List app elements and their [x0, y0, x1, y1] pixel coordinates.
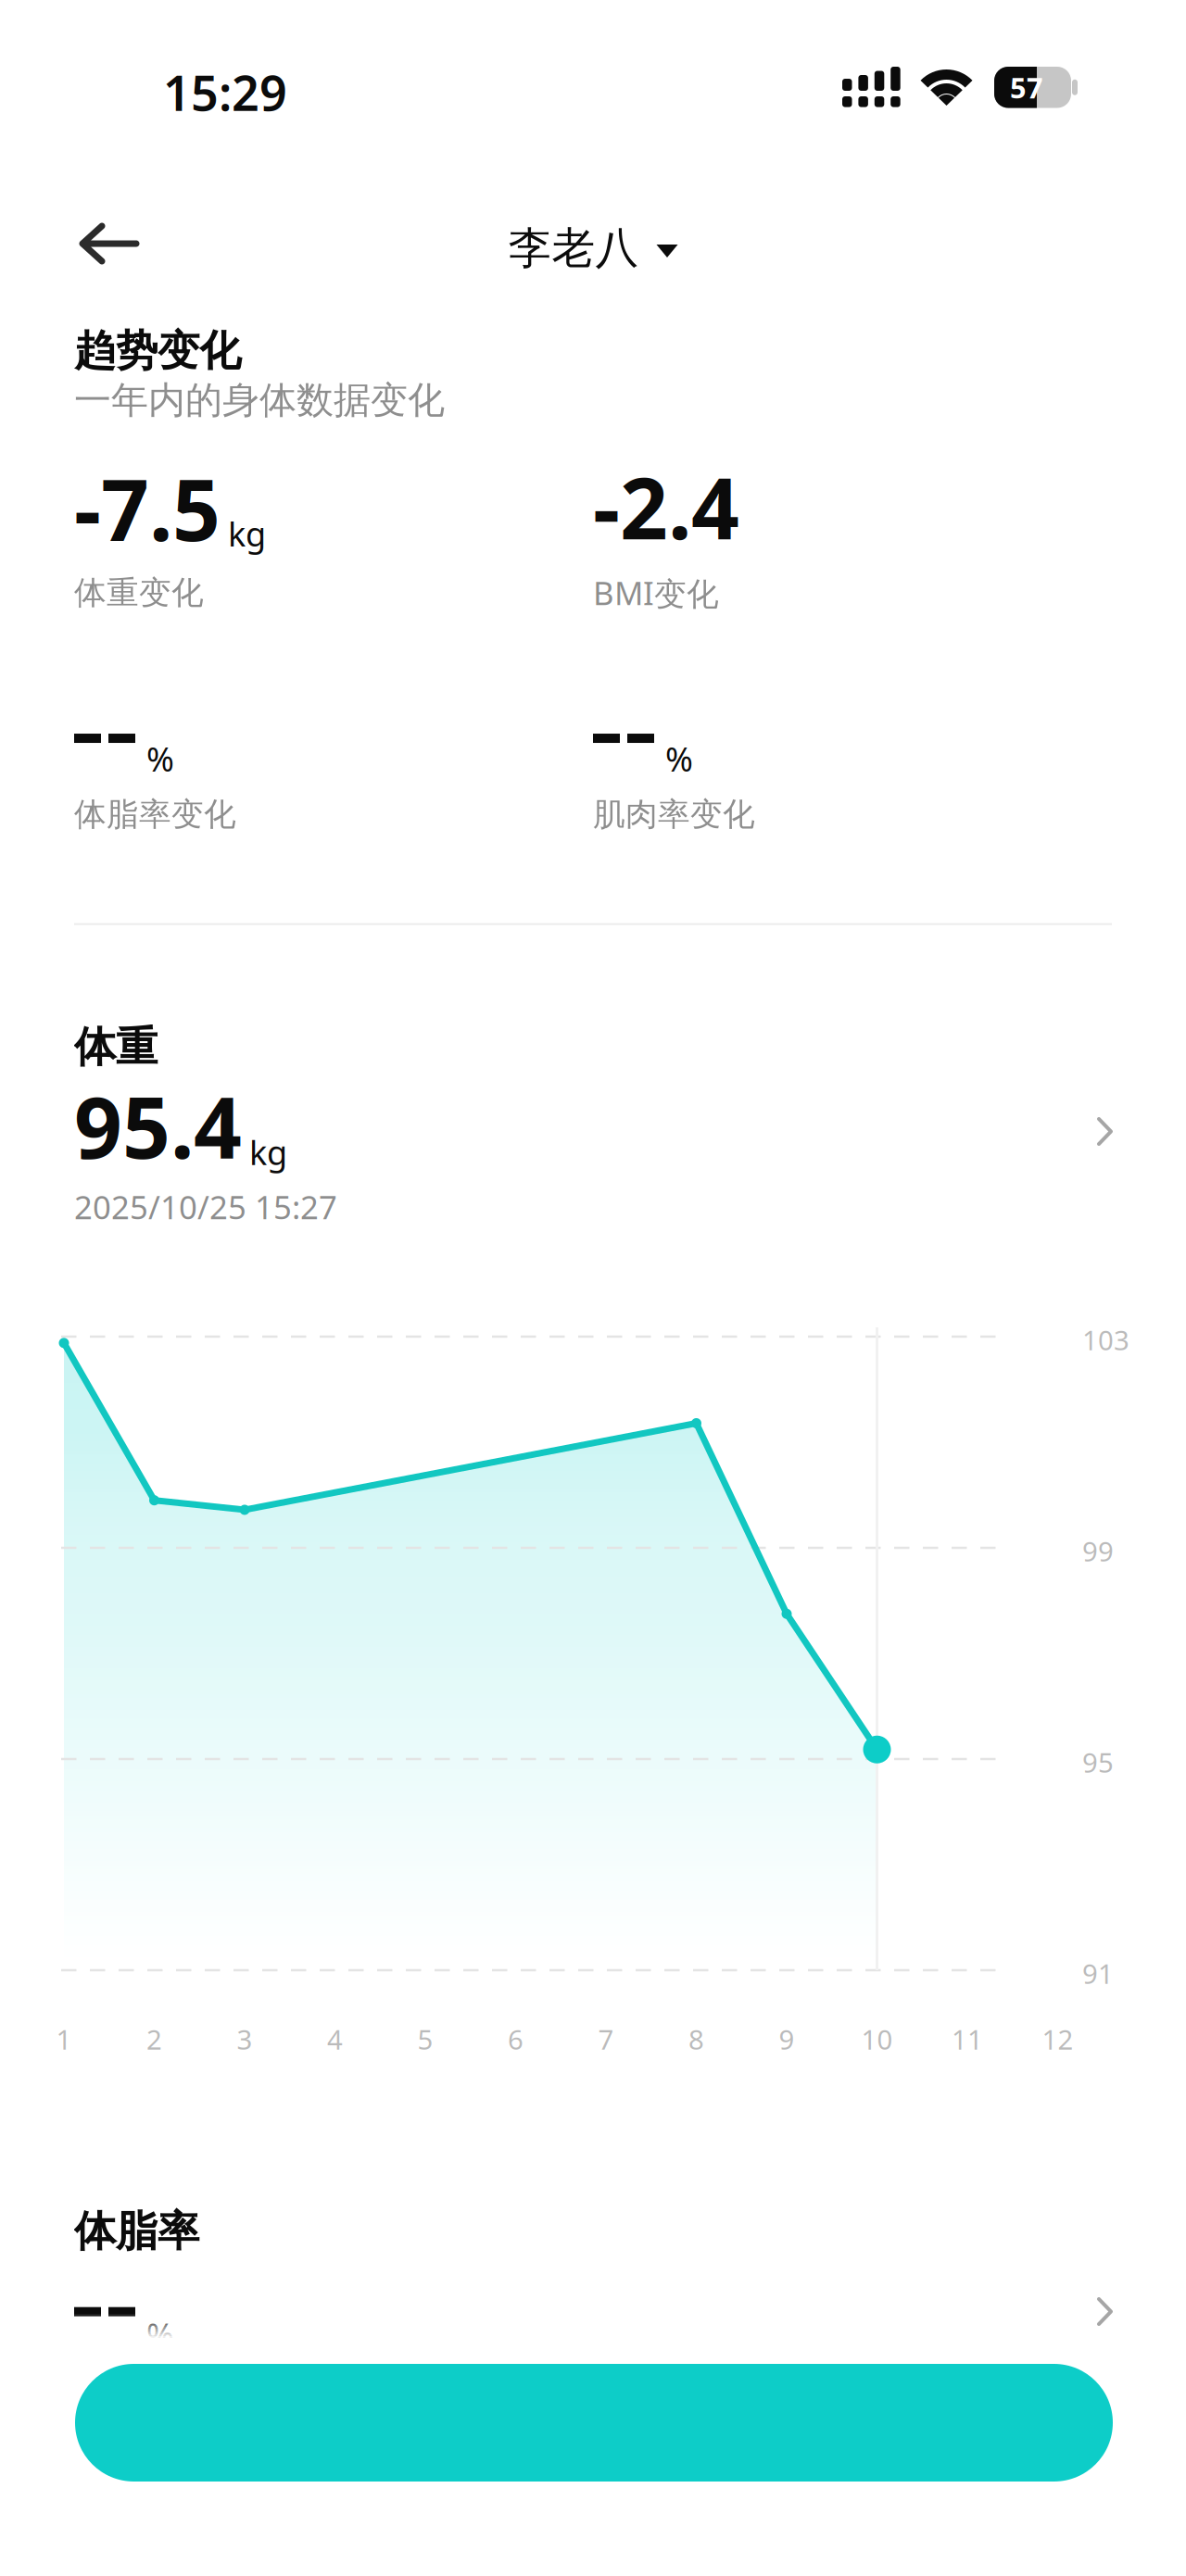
staticText: 103 — [1082, 1322, 1129, 1358]
staticText: 95 — [1082, 1744, 1114, 1780]
staticText: 趋势变化 — [74, 325, 241, 377]
staticText: -7.5 — [74, 453, 221, 564]
staticText: 10 — [861, 2021, 893, 2057]
staticText: 肌肉率变化 — [593, 795, 755, 834]
button[interactable]: 体脂率 — [0, 2205, 1186, 2357]
button[interactable]: Back — [54, 202, 165, 295]
staticText: 一年内的身体数据变化 — [74, 378, 445, 423]
button[interactable]: 李老八 — [495, 201, 691, 295]
button[interactable]: 体重 — [0, 1021, 1186, 1228]
staticText: 7 — [598, 2021, 614, 2057]
staticText: 体重 — [74, 1021, 158, 1073]
staticText: 15:29 — [163, 60, 287, 124]
staticText: 99 — [1082, 1533, 1114, 1569]
staticText: 8 — [688, 2021, 704, 2057]
staticText: 1 — [56, 2021, 72, 2057]
staticText: kg — [249, 1130, 287, 1174]
staticText: 9 — [779, 2021, 795, 2057]
staticText: 体脂率变化 — [74, 795, 236, 834]
staticText: % — [146, 736, 174, 781]
staticText: 体重变化 — [74, 573, 204, 612]
staticText: BMI变化 — [593, 571, 719, 614]
staticText: 57 — [1010, 68, 1043, 106]
staticText: 11 — [952, 2021, 983, 2057]
staticText: kg — [228, 511, 266, 556]
staticText: 12 — [1042, 2021, 1073, 2057]
staticText: 6 — [508, 2021, 524, 2057]
staticText: 2025/10/25 15:27 — [74, 1185, 337, 1228]
staticText: 体脂率 — [74, 2205, 199, 2257]
staticText: % — [146, 2313, 174, 2357]
staticText: 91 — [1082, 1955, 1114, 1992]
staticText: 2 — [146, 2021, 162, 2057]
button[interactable]: 立即测量 — [75, 2364, 1113, 2482]
staticText: -2.4 — [593, 451, 739, 562]
staticText: % — [665, 736, 693, 781]
staticText: 4 — [327, 2021, 343, 2057]
staticText: 李老八 — [508, 222, 639, 275]
staticText: 95.4 — [74, 1070, 242, 1182]
staticText: 5 — [417, 2021, 433, 2057]
staticText: 3 — [237, 2021, 252, 2057]
